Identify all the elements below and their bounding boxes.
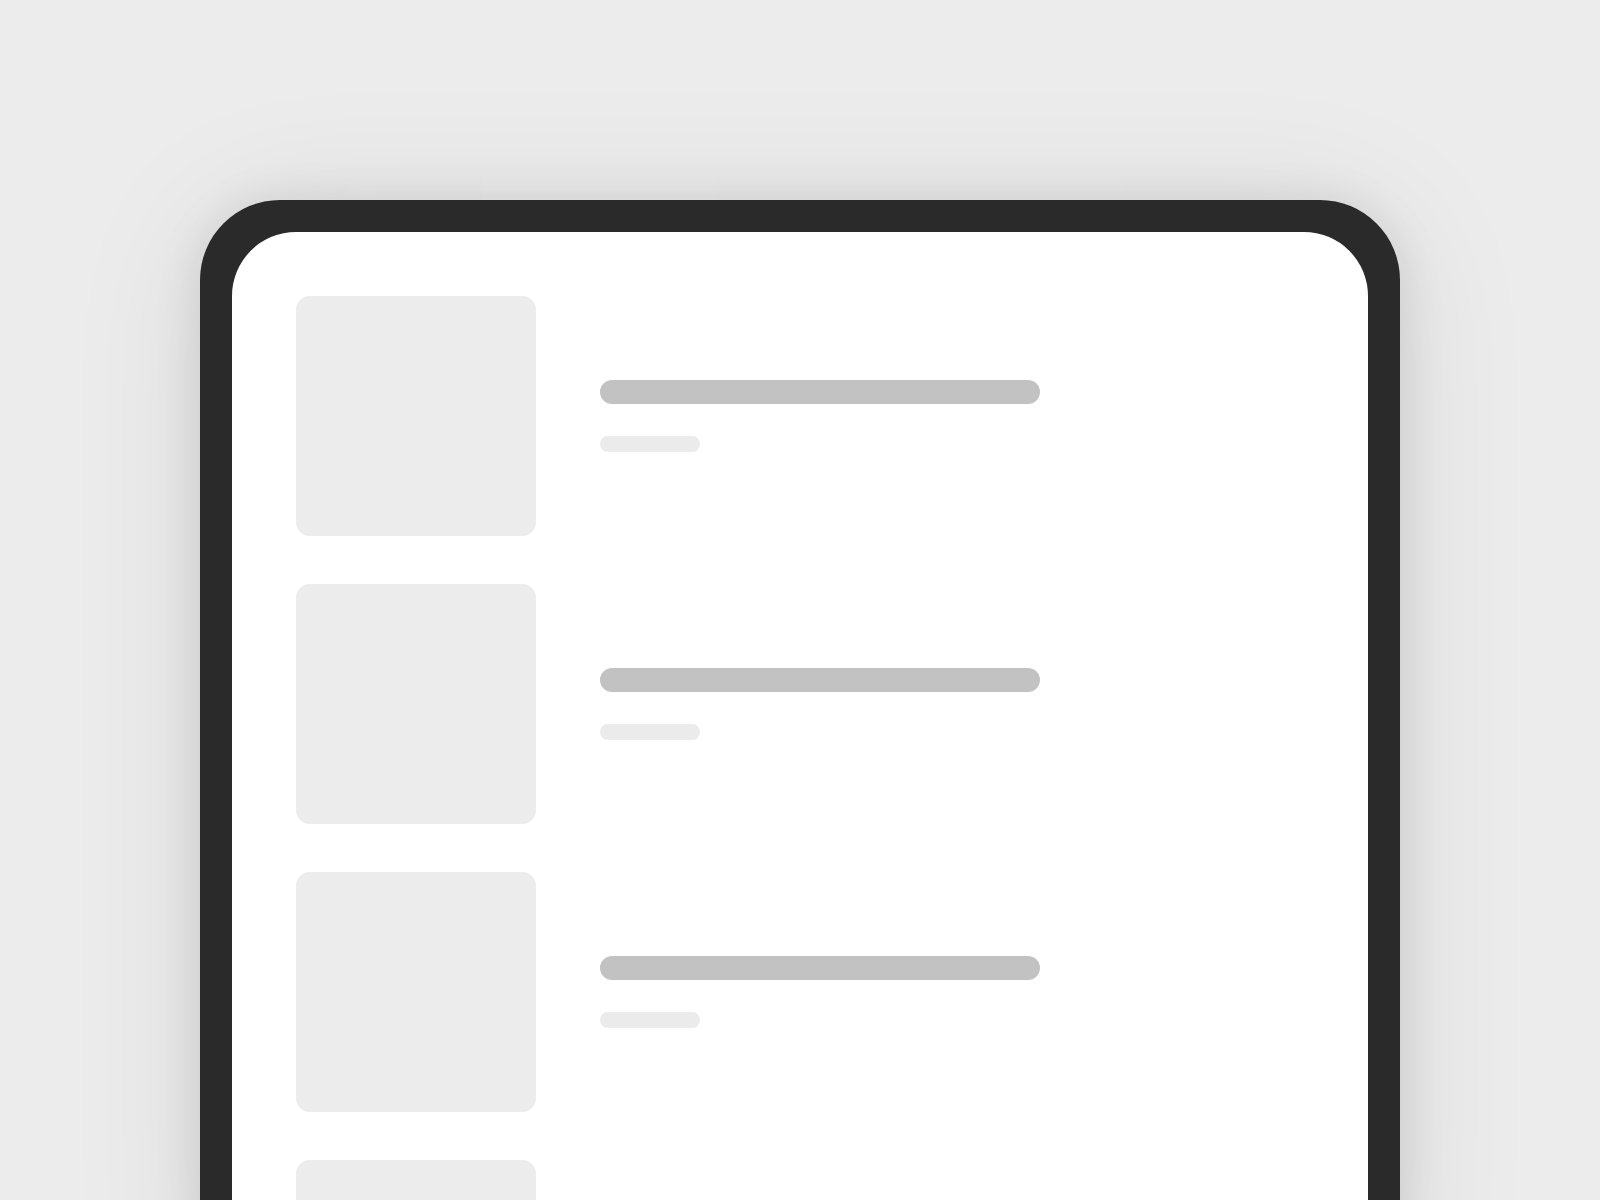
button[interactable]: Loading list item (296, 296, 1240, 536)
button[interactable]: Loading list item (296, 1160, 1240, 1200)
button[interactable]: Loading list item (296, 584, 1240, 824)
button[interactable]: Loading list item (296, 872, 1240, 1112)
